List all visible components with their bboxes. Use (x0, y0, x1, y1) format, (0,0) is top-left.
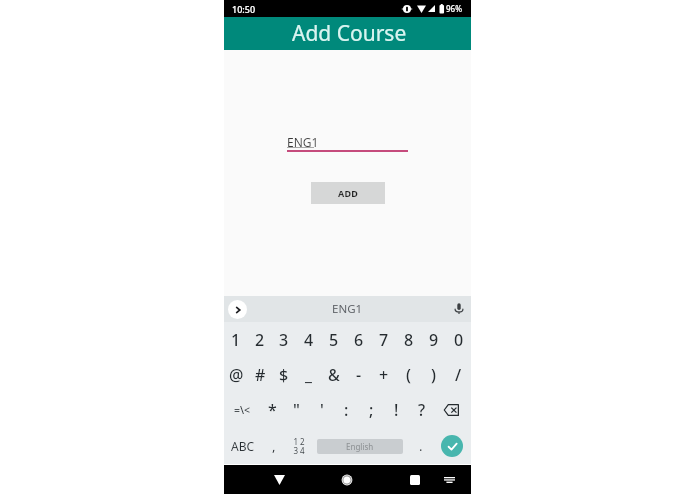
button[interactable]: _ (296, 357, 321, 392)
staticText: ADD (338, 187, 359, 199)
button[interactable]: / (446, 357, 471, 392)
staticText: 3 (279, 329, 289, 351)
staticText: =\< (234, 403, 251, 417)
button[interactable]: =\< (224, 392, 260, 428)
button[interactable]: 0 (446, 322, 471, 357)
staticText: ! (394, 399, 399, 421)
staticText: $ (279, 364, 289, 386)
staticText: & (328, 364, 340, 386)
staticText: ENG1 (332, 301, 363, 317)
staticText: " (293, 399, 300, 421)
staticText: * (268, 399, 277, 421)
staticText: ) (431, 364, 436, 386)
staticText: Add Course (292, 19, 407, 48)
button[interactable]: 7 (371, 322, 396, 357)
button[interactable]: : (334, 392, 359, 428)
button[interactable]: ; (359, 392, 384, 428)
button[interactable]: 5 (321, 322, 346, 357)
button[interactable]: ABC (224, 428, 261, 464)
staticText: - (356, 364, 362, 386)
button[interactable]: ' (309, 392, 334, 428)
staticText: 10:50 (232, 3, 256, 15)
button[interactable]: Recent apps (402, 467, 428, 493)
button[interactable]: English (317, 439, 403, 454)
staticText: 96% (446, 3, 462, 14)
button[interactable]: Home (334, 467, 360, 493)
button[interactable]: 1 (224, 322, 248, 357)
staticText: ( (406, 364, 411, 386)
staticText: , (272, 437, 276, 455)
button[interactable]: - (346, 357, 371, 392)
staticText: ENG1 (287, 134, 319, 150)
button[interactable]: # (248, 357, 272, 392)
button[interactable]: Back (266, 467, 292, 493)
button[interactable]: 3 (272, 322, 296, 357)
staticText: ' (320, 399, 324, 421)
button[interactable]: . (408, 428, 433, 464)
button[interactable]: ADD (311, 182, 385, 204)
staticText: 8 (404, 329, 414, 351)
button[interactable]: ! (384, 392, 409, 428)
button[interactable]: ) (421, 357, 446, 392)
staticText: English (346, 441, 374, 452)
button[interactable]: + (371, 357, 396, 392)
staticText: @ (229, 364, 244, 386)
staticText: 1 (231, 329, 241, 351)
button[interactable]: & (321, 357, 346, 392)
button[interactable]: 6 (346, 322, 371, 357)
button[interactable]: " (284, 392, 309, 428)
button[interactable]: 4 (296, 322, 321, 357)
button[interactable]: * (260, 392, 284, 428)
staticText: _ (305, 364, 312, 386)
button[interactable]: Numbers (286, 428, 311, 464)
staticText: 6 (354, 329, 364, 351)
staticText: : (344, 399, 349, 421)
staticText: / (455, 364, 462, 386)
button[interactable]: More suggestions (228, 300, 247, 319)
staticText: 5 (329, 329, 339, 351)
staticText: 0 (454, 329, 464, 351)
staticText: + (379, 364, 389, 386)
button[interactable]: $ (272, 357, 296, 392)
staticText: 2 (255, 329, 265, 351)
button[interactable]: 2 (248, 322, 272, 357)
staticText: ABC (231, 438, 255, 454)
button[interactable]: 9 (421, 322, 446, 357)
staticText: 9 (429, 329, 439, 351)
button[interactable]: ( (396, 357, 421, 392)
staticText: 1 2 3 4 (293, 436, 305, 457)
staticText: ? (418, 399, 426, 421)
staticText: 4 (304, 329, 314, 351)
button[interactable]: , (261, 428, 286, 464)
button[interactable]: ? (409, 392, 434, 428)
button[interactable]: Add Course (224, 17, 471, 50)
staticText: ; (369, 399, 374, 421)
staticText: 7 (379, 329, 389, 351)
button[interactable]: Switch keyboard (439, 470, 459, 490)
button[interactable]: @ (224, 357, 248, 392)
button[interactable]: Voice input (451, 300, 467, 316)
staticText: . (419, 437, 423, 455)
button[interactable]: Backspace (434, 392, 471, 428)
button[interactable]: 8 (396, 322, 421, 357)
button[interactable]: Enter (433, 428, 471, 464)
staticText: # (255, 364, 266, 386)
